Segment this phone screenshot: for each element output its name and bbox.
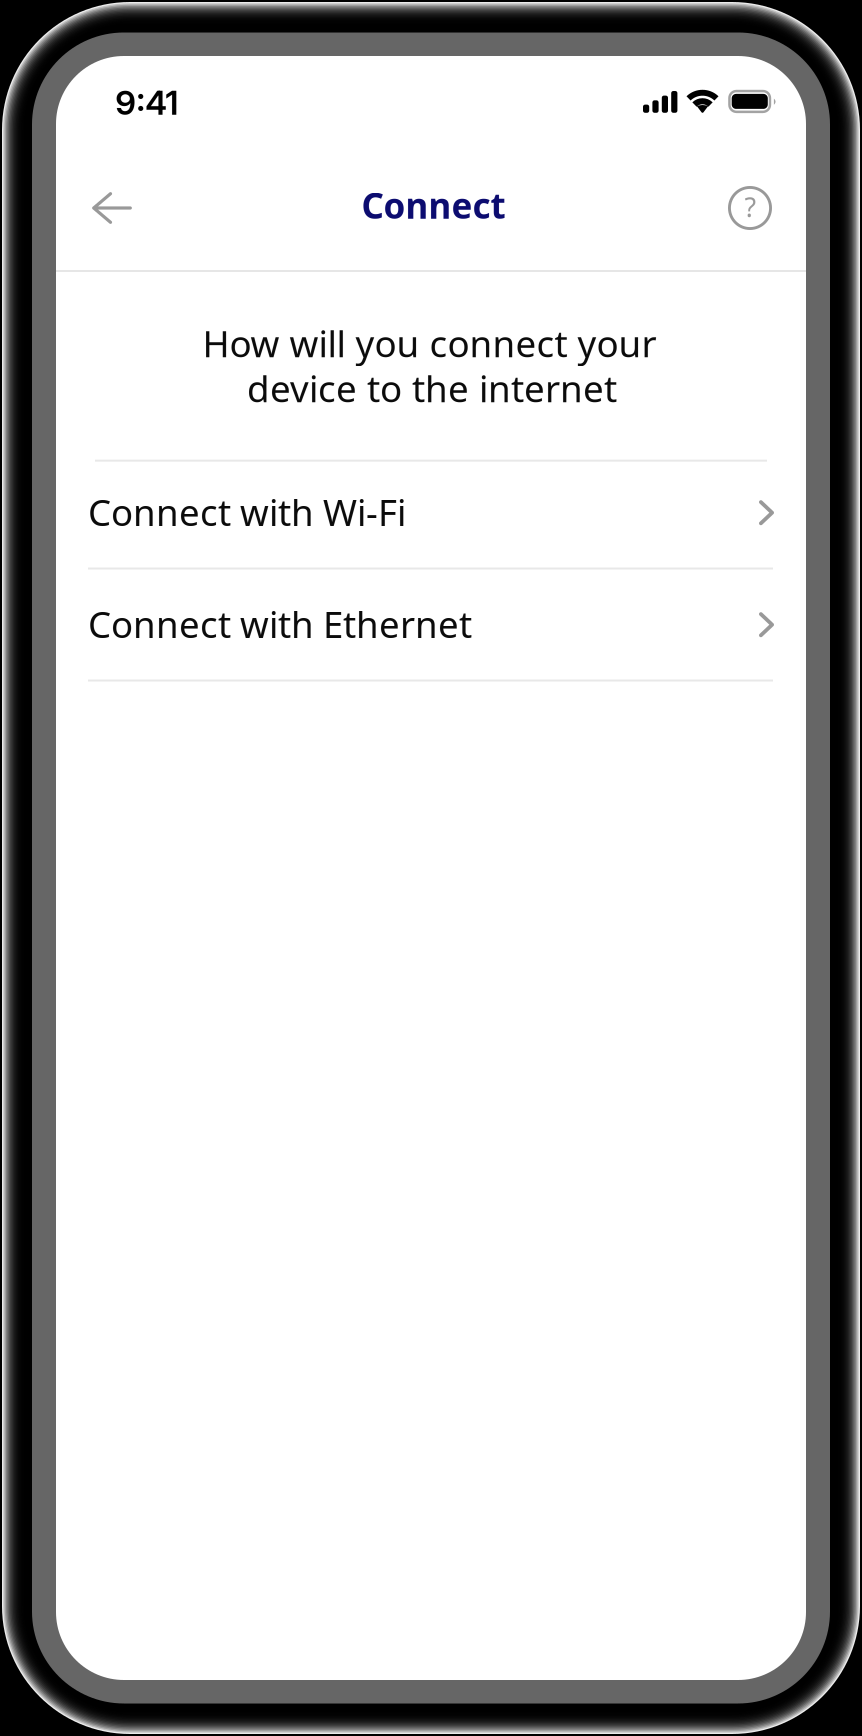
button[interactable]: Connect with Ethernet (56, 570, 806, 679)
staticText: ? (744, 189, 756, 225)
staticText: Connect with Ethernet (88, 599, 472, 649)
staticText: device to the internet (247, 363, 617, 413)
button[interactable]: Back (69, 165, 155, 251)
button[interactable]: Connect with Wi-Fi (56, 462, 806, 567)
staticText: How will you connect your (202, 318, 656, 368)
staticText: Connect with Wi-Fi (88, 487, 406, 537)
button[interactable]: Help (707, 165, 793, 251)
staticText: Connect (361, 181, 505, 229)
staticText: 9:41 (115, 82, 178, 123)
